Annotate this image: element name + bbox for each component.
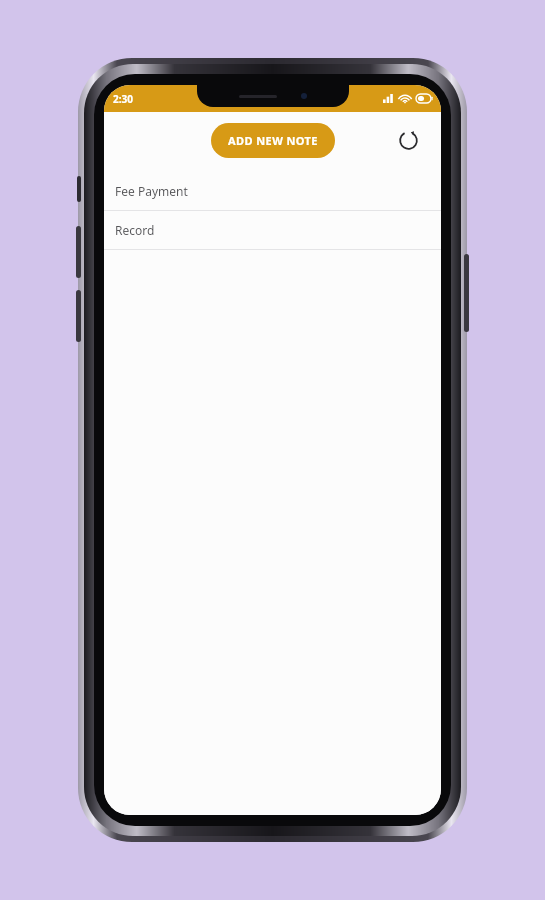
button[interactable]: ADD NEW NOTE [211,123,335,158]
button[interactable]: Refresh [391,123,425,157]
staticText: Fee Payment [115,183,188,199]
button[interactable]: Record [104,211,441,249]
staticText: Record [115,222,155,238]
staticText: ADD NEW NOTE [228,133,318,148]
button[interactable]: Fee Payment [104,172,441,210]
staticText: 2:30 [113,92,133,106]
